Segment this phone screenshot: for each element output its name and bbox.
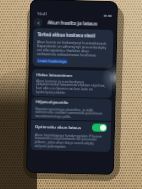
staticText: Lisää lisätietoja	[38, 58, 67, 64]
button[interactable]: Hiljaisohjaustila	[31, 97, 112, 121]
staticText: Akun huolto ja lataus	[47, 19, 98, 28]
button[interactable]: Tärkeä akkua koskeva viesti	[32, 28, 113, 68]
staticText: Akun käyttötapoja hyödynnetään iPhonen l…	[34, 132, 107, 150]
staticText: Tärkeä akkua koskeva viesti	[37, 31, 96, 38]
staticText: 16:41	[37, 11, 48, 17]
staticText: Akun kunnon ja suorituskyvyn ylläpitämis…	[36, 78, 108, 96]
button[interactable]: Lisää lisätietoja	[37, 58, 68, 64]
button[interactable]: Back	[33, 18, 43, 27]
staticText: Optimoitu akun lataus	[35, 123, 92, 130]
button[interactable]: Hidas lataaminen	[32, 69, 112, 98]
staticText: Akun kunto on heikentynyt huomattavasti.…	[37, 39, 109, 58]
button[interactable]: Optimoitu akun lataus	[92, 123, 107, 132]
staticText: Hidas lataaminen	[36, 71, 72, 78]
button[interactable]: Optimoitu akun lataus	[30, 120, 111, 152]
staticText: Hiljaisohjaustila	[36, 98, 69, 105]
staticText: Rajoitat toimintoja yksitellen, ja tällä…	[35, 106, 107, 120]
